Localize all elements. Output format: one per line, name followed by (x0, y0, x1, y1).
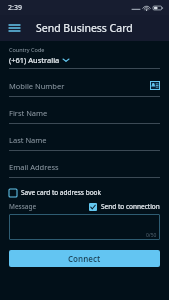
staticText: 2:39 (8, 3, 22, 13)
staticText: Last Name (9, 135, 47, 145)
button[interactable]: First Name (9, 108, 160, 124)
button[interactable]: Last Name (9, 135, 160, 151)
button[interactable]: Country Code (9, 46, 160, 69)
staticText: 0/50 (146, 232, 157, 239)
staticText: Message (9, 202, 37, 211)
button[interactable]: Send to connection (89, 202, 160, 211)
staticText: First Name (9, 108, 48, 118)
staticText: Send to connection (101, 202, 160, 211)
button[interactable]: Open navigation menu (4, 18, 24, 38)
button[interactable]: Mobile Number (9, 80, 160, 97)
button[interactable]: Connect (9, 250, 160, 267)
staticText: Send Business Card (36, 21, 133, 35)
button[interactable]: Save card to address book (9, 186, 160, 199)
staticText: (+61) Australia (9, 55, 60, 65)
staticText: Connect (68, 253, 101, 264)
button[interactable]: Email Address (9, 162, 160, 178)
staticText: Mobile Number (9, 81, 65, 91)
staticText: Country Code (9, 46, 45, 53)
button[interactable]: 0/50 (9, 214, 160, 240)
staticText: Save card to address book (21, 188, 101, 197)
button[interactable]: Pick contact (149, 80, 160, 91)
staticText: Email Address (9, 162, 59, 172)
